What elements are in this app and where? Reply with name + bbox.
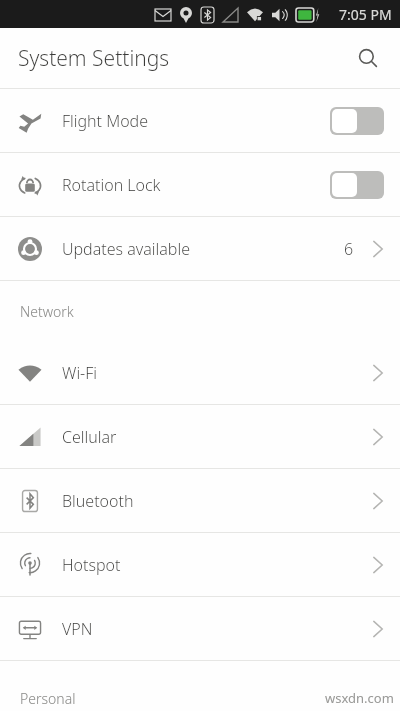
staticText: Flight Mode [62,110,330,132]
button[interactable]: Bluetooth [0,469,400,532]
button[interactable]: VPN [0,597,400,660]
button[interactable]: Search [350,40,386,76]
staticText: wsxdn.com [325,689,394,707]
button[interactable]: Flight Mode [0,89,400,152]
staticText: Wi-Fi [62,362,372,384]
staticText: Cellular [62,426,372,448]
staticText: VPN [62,618,372,640]
staticText: Rotation Lock [62,174,330,196]
button[interactable]: Hotspot [0,533,400,596]
button[interactable]: Toggle [330,107,384,135]
button[interactable]: Cellular [0,405,400,468]
button[interactable]: Wi-Fi [0,341,400,404]
staticText: Hotspot [62,554,372,576]
button[interactable]: Updates available [0,217,400,280]
staticText: Updates available [62,238,344,260]
staticText: 7:05 PM [339,5,392,24]
staticText: System Settings [18,44,170,73]
staticText: Network [20,302,74,321]
staticText: Bluetooth [62,490,372,512]
button[interactable]: Rotation Lock [0,153,400,216]
staticText: Personal [20,689,76,708]
button[interactable]: Toggle [330,171,384,199]
staticText: 6 [344,238,354,260]
